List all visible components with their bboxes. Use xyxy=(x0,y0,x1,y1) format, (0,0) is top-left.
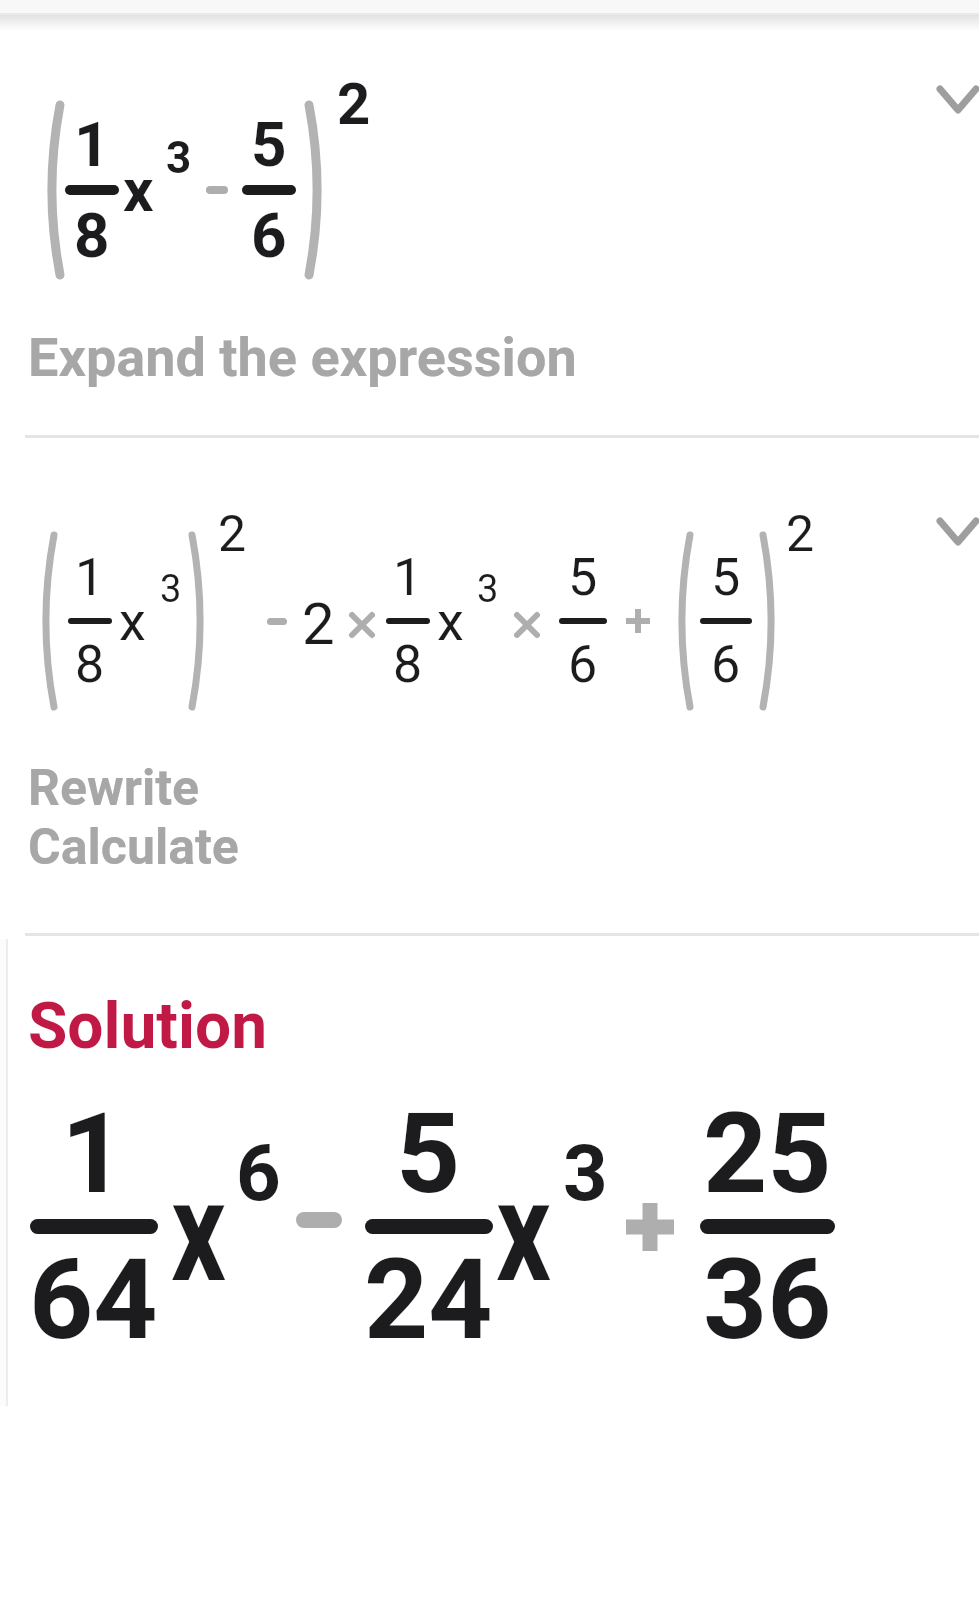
staticText: 1 xyxy=(74,108,110,181)
staticText: 2 xyxy=(786,505,815,564)
staticText: 8 xyxy=(74,199,110,272)
staticText: x xyxy=(171,1150,227,1315)
staticText: 3 xyxy=(160,567,182,612)
staticText: 6 xyxy=(251,199,287,272)
staticText: 1 xyxy=(61,1088,126,1219)
staticText: 5 xyxy=(396,1088,461,1219)
staticText: 3 xyxy=(477,567,499,612)
staticText: 8 xyxy=(75,634,105,695)
staticText: Solution xyxy=(28,989,267,1064)
staticText: 6 xyxy=(568,634,598,695)
staticText: 25 xyxy=(703,1088,832,1219)
staticText: Calculate xyxy=(28,818,239,877)
staticText: x xyxy=(437,590,464,653)
staticText: 1 xyxy=(75,547,105,608)
staticText: 3 xyxy=(166,132,192,184)
staticText: 2 xyxy=(302,590,335,658)
staticText: 36 xyxy=(703,1234,832,1365)
staticText: 3 xyxy=(563,1128,608,1219)
staticText: Rewrite xyxy=(28,759,200,818)
staticText: 6 xyxy=(711,634,741,695)
staticText: 5 xyxy=(711,547,741,608)
staticText: 24 xyxy=(364,1234,493,1365)
staticText: Expand the expression xyxy=(28,326,577,389)
staticText: 5 xyxy=(251,108,287,181)
staticText: x xyxy=(496,1150,552,1315)
staticText: 2 xyxy=(337,70,371,138)
staticText: x xyxy=(123,155,154,225)
staticText: 6 xyxy=(236,1128,281,1219)
staticText: 8 xyxy=(393,634,423,695)
staticText: 2 xyxy=(218,505,247,564)
staticText: 1 xyxy=(393,547,423,608)
staticText: 5 xyxy=(568,547,598,608)
staticText: x xyxy=(119,590,146,653)
staticText: 64 xyxy=(29,1234,158,1365)
